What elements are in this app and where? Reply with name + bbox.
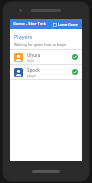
button[interactable]: Uhura bbox=[10, 50, 82, 64]
staticText: Players bbox=[14, 33, 33, 40]
staticText: Spock bbox=[27, 67, 40, 73]
staticText: Uhura bbox=[27, 52, 41, 58]
staticText: Waiting for game host to begin pointing. bbox=[14, 42, 78, 47]
staticText: Leave Game bbox=[58, 22, 78, 27]
button[interactable]: Spock bbox=[10, 65, 82, 79]
button[interactable]: Leave Game bbox=[52, 21, 79, 28]
staticText: Game - Star Trek bbox=[13, 21, 47, 27]
staticText: player bbox=[27, 74, 37, 78]
other: Ready bbox=[72, 69, 78, 75]
staticText: host bbox=[27, 59, 34, 63]
other: Ready bbox=[72, 54, 78, 60]
other: Leave Game bbox=[53, 23, 57, 27]
